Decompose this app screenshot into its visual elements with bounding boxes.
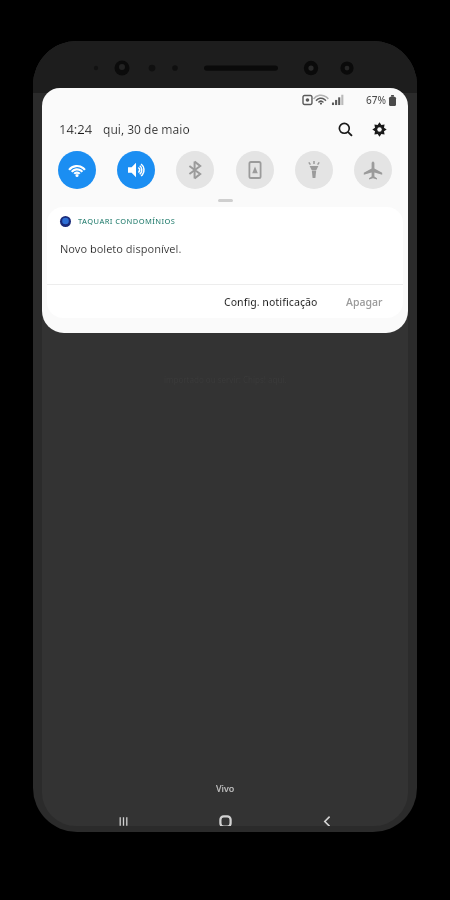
button[interactable]: Configurações — [364, 114, 394, 144]
button[interactable]: TAQUARI CONDOMÍNIOS — [47, 207, 403, 318]
button[interactable]: Início — [204, 804, 246, 826]
staticText: Vivo — [216, 782, 235, 794]
staticText: qui, 30 de maio — [103, 121, 190, 137]
button[interactable]: Modo avião — [354, 151, 392, 189]
button[interactable]: Voltar — [306, 804, 348, 826]
button[interactable]: Wi-Fi — [58, 151, 96, 189]
staticText: TAQUARI CONDOMÍNIOS — [78, 216, 176, 226]
staticText: 14:24 — [59, 120, 93, 138]
button[interactable]: Som — [117, 151, 155, 189]
button[interactable]: Lanterna — [295, 151, 333, 189]
staticText: 67% — [366, 93, 386, 107]
button[interactable]: Rotação automática — [236, 151, 274, 189]
button[interactable]: Pesquisar — [330, 114, 360, 144]
button[interactable]: Recentes — [102, 804, 144, 826]
button[interactable]: Apagar — [338, 290, 391, 314]
staticText: Novo boleto disponível. — [60, 241, 182, 256]
staticText: Config. notificação — [224, 295, 318, 309]
button[interactable]: Config. notificação — [216, 290, 326, 314]
staticText: Apagar — [346, 295, 383, 309]
button[interactable]: Bluetooth — [176, 151, 214, 189]
